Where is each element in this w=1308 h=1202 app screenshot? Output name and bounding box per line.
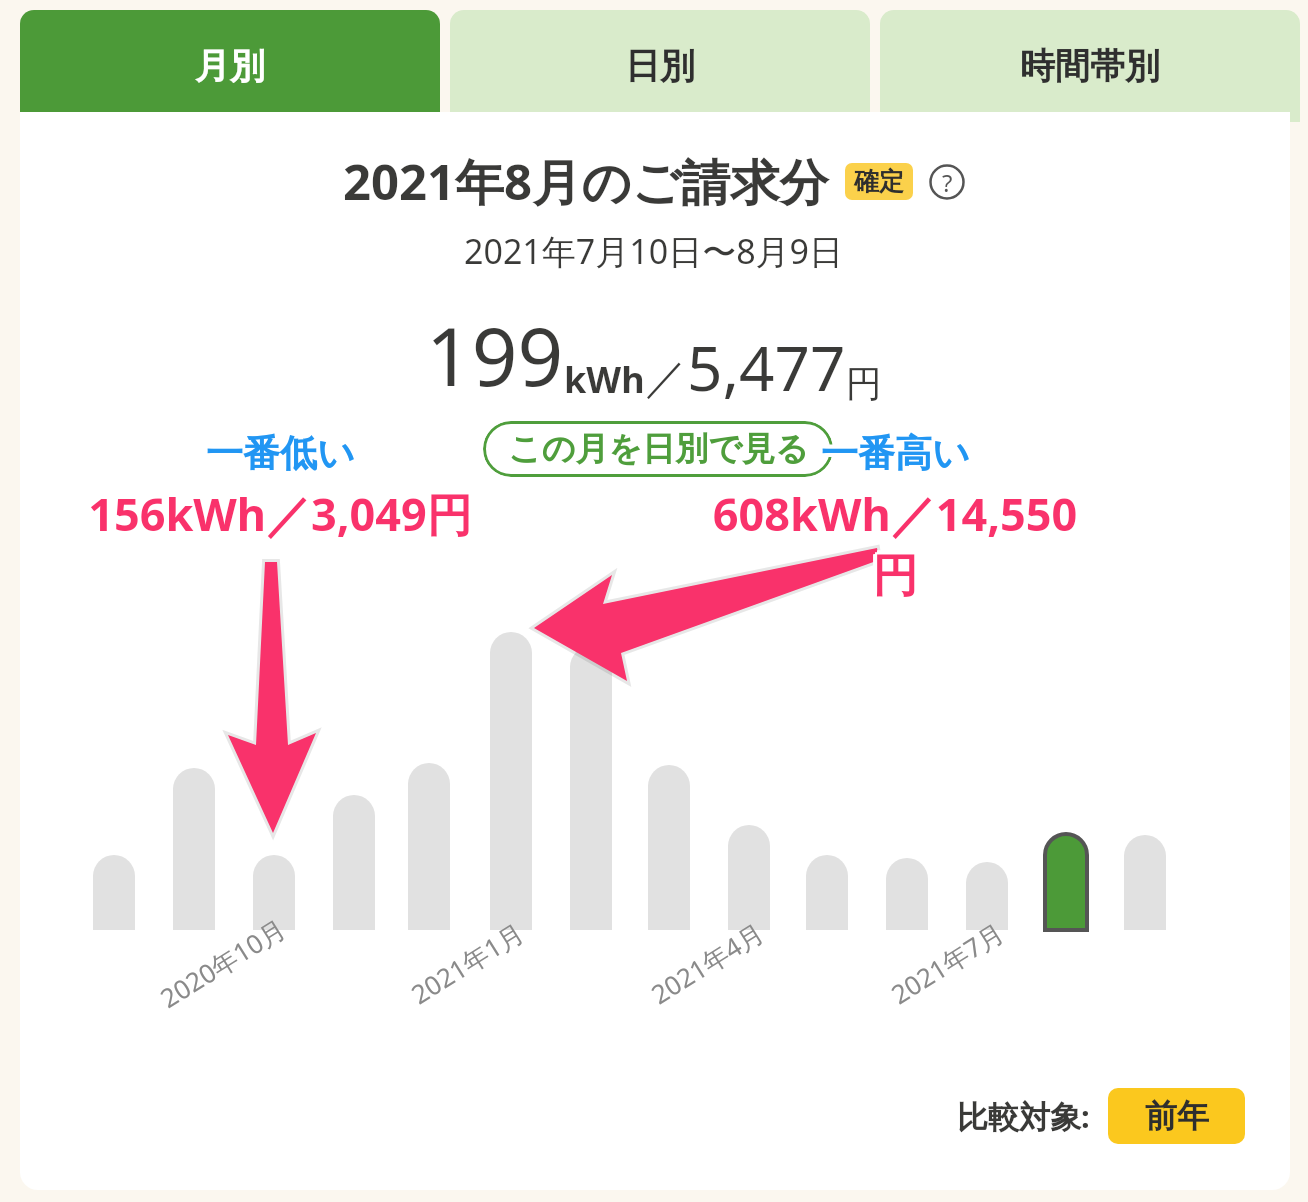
staticText: 一番低い (208, 428, 357, 475)
staticText: 一番高い (824, 430, 973, 477)
staticText: 2021年7月 (884, 914, 1011, 1012)
staticText: 608kWh／14,550円 (699, 483, 1099, 605)
staticText: 608kWh／14,550円 (697, 485, 1097, 607)
staticText: 一番高い (821, 434, 970, 481)
staticText: 一番高い (823, 432, 972, 479)
staticText: 一番高い (821, 426, 970, 473)
staticText: 608kWh／14,550円 (695, 480, 1095, 602)
staticText: 一番低い (203, 430, 352, 477)
staticText: 円 (846, 361, 882, 406)
staticText: 608kWh／14,550円 (695, 483, 1095, 605)
staticText: 一番低い (208, 432, 357, 479)
staticText: 608kWh／14,550円 (691, 483, 1091, 605)
staticText: 156kWh／3,049円 (88, 483, 472, 544)
staticText: 156kWh／3,049円 (86, 485, 470, 546)
staticText: 一番高い (818, 430, 967, 477)
staticText: 2020年10月 (153, 910, 293, 1016)
button[interactable]: 前年 (1108, 1088, 1245, 1144)
staticText: 156kWh／3,049円 (88, 479, 472, 540)
staticText: 一番高い (819, 432, 968, 479)
staticText: 一番低い (206, 427, 355, 474)
staticText: 156kWh／3,049円 (88, 480, 472, 541)
staticText: kWh (564, 355, 645, 404)
staticText: 比較対象: (957, 1095, 1090, 1137)
staticText: 前年 (1145, 1096, 1209, 1136)
staticText: 一番高い (821, 433, 970, 480)
staticText: 一番低い (204, 428, 353, 475)
staticText: 2021年8月のご請求分 (343, 148, 829, 215)
staticText: 156kWh／3,049円 (85, 483, 469, 544)
staticText: 一番高い (817, 430, 966, 477)
staticText: 月別 (195, 44, 265, 88)
staticText: 156kWh／3,049円 (88, 486, 472, 547)
staticText: 608kWh／14,550円 (695, 479, 1095, 601)
staticText: 608kWh／14,550円 (693, 485, 1093, 607)
staticText: 一番低い (209, 430, 358, 477)
staticText: 608kWh／14,550円 (695, 487, 1095, 609)
staticText: 5,477 (687, 325, 846, 409)
staticText: 一番低い (202, 430, 351, 477)
button[interactable]: この月を日別で見る (483, 421, 833, 477)
staticText: 一番低い (206, 426, 355, 473)
staticText: 2021年7月10日〜8月9日 (464, 228, 844, 274)
staticText: 608kWh／14,550円 (698, 483, 1098, 605)
staticText: 199 (426, 300, 564, 409)
staticText: 608kWh／14,550円 (695, 486, 1095, 608)
staticText: 一番低い (204, 432, 353, 479)
staticText: 156kWh／3,049円 (90, 481, 474, 542)
staticText: 確定 (854, 166, 904, 197)
staticText: 156kWh／3,049円 (92, 483, 476, 544)
staticText: ? (942, 166, 953, 199)
staticText: 156kWh／3,049円 (84, 483, 468, 544)
button[interactable]: 月別 (20, 10, 440, 122)
button[interactable]: 日別 (450, 10, 870, 122)
staticText: 一番低い (206, 433, 355, 480)
staticText: 一番低い (206, 434, 355, 481)
staticText: 608kWh／14,550円 (697, 481, 1097, 603)
staticText: 一番低い (206, 430, 355, 477)
staticText: 時間帯別 (1020, 44, 1160, 88)
staticText: 156kWh／3,049円 (86, 481, 470, 542)
staticText: 一番高い (821, 427, 970, 474)
staticText: 一番低い (210, 430, 359, 477)
staticText: 608kWh／14,550円 (692, 483, 1092, 605)
staticText: 2021年1月 (404, 914, 531, 1012)
staticText: 156kWh／3,049円 (90, 485, 474, 546)
staticText: 156kWh／3,049円 (88, 487, 472, 548)
staticText: 608kWh／14,550円 (693, 481, 1093, 603)
staticText: 2021年4月 (644, 914, 771, 1012)
staticText: 一番高い (823, 428, 972, 475)
staticText: この月を日別で見る (508, 428, 809, 470)
staticText: 一番高い (825, 430, 974, 477)
staticText: 156kWh／3,049円 (91, 483, 475, 544)
staticText: 一番高い (819, 428, 968, 475)
staticText: 一番高い (821, 430, 970, 477)
staticText: ／ (645, 352, 687, 405)
staticText: 日別 (625, 44, 695, 88)
button[interactable]: ヘルプ (929, 164, 965, 200)
button[interactable]: 時間帯別 (880, 10, 1300, 122)
